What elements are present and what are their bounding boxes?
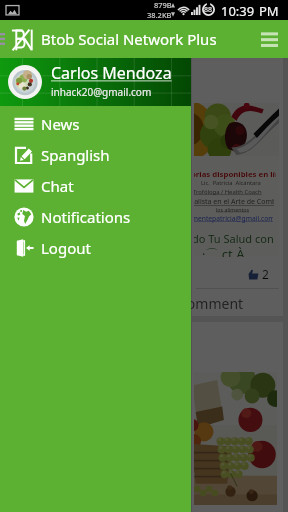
staticText: 2 bbox=[262, 266, 269, 282]
staticText: Lic. Patricia Alcántara bbox=[201, 179, 261, 187]
staticText: Comment bbox=[178, 294, 244, 313]
staticText: Btob Social Network Plus bbox=[41, 29, 217, 49]
staticText: amentepatricia@gmail.com bbox=[194, 214, 273, 223]
staticText: cialista en el Arte de Combinar bbox=[194, 197, 274, 207]
button[interactable]: Spanglish bbox=[0, 139, 191, 170]
button[interactable]: Logout bbox=[0, 232, 191, 263]
staticText: Carlos Mendoza bbox=[51, 62, 172, 84]
staticText: ·⌒ ct À bbox=[202, 245, 245, 257]
button[interactable]: Notifications bbox=[0, 201, 191, 232]
button[interactable]: Open navigation drawer bbox=[0, 20, 10, 58]
staticText: 88 bbox=[204, 5, 213, 15]
staticText: PM bbox=[259, 2, 279, 20]
staticText: Trofóloga / Health Coach bbox=[194, 188, 262, 196]
staticText: 879B bbox=[154, 0, 172, 10]
staticText: Notifications bbox=[41, 207, 131, 227]
staticText: Logout bbox=[41, 238, 91, 258]
staticText: inhack20@gmail.com bbox=[51, 85, 152, 99]
button[interactable]: More options bbox=[250, 20, 288, 58]
staticText: News bbox=[41, 114, 80, 134]
button[interactable]: Chat bbox=[0, 170, 191, 201]
staticText: los alimentos bbox=[216, 206, 250, 213]
staticText: 10:39 bbox=[221, 2, 255, 20]
staticText: Spanglish bbox=[41, 145, 110, 165]
button[interactable]: Carlos Mendoza bbox=[0, 58, 191, 106]
staticText: do Tu Salud con bbox=[194, 231, 274, 246]
staticText: 38.2KB bbox=[147, 10, 172, 20]
staticText: Chat bbox=[41, 176, 74, 196]
button[interactable]: News bbox=[0, 108, 191, 139]
staticText: orias disponibles en línea bbox=[194, 169, 276, 180]
